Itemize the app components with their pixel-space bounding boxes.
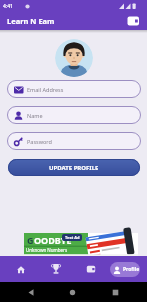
staticText: 4:41 — [3, 3, 13, 10]
staticText: Password — [27, 138, 52, 145]
staticText: Name — [27, 112, 43, 119]
button[interactable] — [15, 264, 27, 276]
button[interactable] — [86, 265, 98, 276]
button[interactable]: G — [0, 233, 147, 256]
staticText: Email Address — [27, 86, 64, 93]
staticText: Unknown Numbers — [26, 247, 68, 253]
button[interactable]: Password — [7, 132, 141, 150]
button[interactable]: UPDATE PROFILE — [8, 159, 140, 176]
staticText: Test Ad — [65, 235, 80, 240]
button[interactable]: Email Address — [7, 80, 141, 98]
staticText: Learn N Eam — [7, 16, 55, 26]
staticText: G — [27, 234, 34, 246]
staticText: OODBYE — [34, 234, 72, 246]
staticText: UPDATE PROFILE — [49, 164, 99, 172]
button[interactable] — [50, 263, 62, 275]
button[interactable]: Profile — [110, 262, 140, 277]
button[interactable] — [127, 15, 140, 27]
button[interactable]: Name — [7, 106, 141, 124]
staticText: Profile — [123, 266, 140, 273]
button[interactable] — [55, 39, 93, 77]
